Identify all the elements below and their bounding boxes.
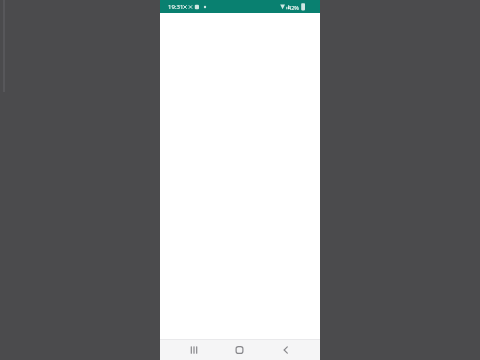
button[interactable] xyxy=(273,339,297,360)
staticText: 19:31 xyxy=(168,3,184,11)
staticText: 42% xyxy=(288,4,299,11)
button[interactable] xyxy=(227,339,251,360)
button[interactable] xyxy=(182,339,206,360)
